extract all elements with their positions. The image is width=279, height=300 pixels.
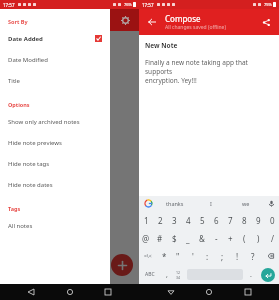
button[interactable]: 8 <box>237 211 251 229</box>
button[interactable]: / <box>265 229 279 247</box>
button[interactable]: 5 <box>195 211 209 229</box>
staticText: : <box>206 251 209 262</box>
button[interactable]: Backspace <box>260 247 279 265</box>
button[interactable]: # <box>153 229 167 247</box>
staticText: ! <box>236 251 239 262</box>
staticText: Hide note previews <box>8 139 102 147</box>
staticText: 17:57 <box>3 2 15 8</box>
staticText: All notes <box>8 222 102 230</box>
button[interactable]: 9 <box>251 211 265 229</box>
button[interactable]: : <box>200 247 215 265</box>
button[interactable]: 4 <box>181 211 195 229</box>
button[interactable]: 0 <box>265 211 279 229</box>
button[interactable]: I <box>193 196 228 211</box>
button[interactable]: Date Modified <box>0 49 110 70</box>
staticText: ABC <box>145 271 155 278</box>
staticText: Date Modified <box>8 56 102 64</box>
staticText: ' <box>192 251 194 262</box>
staticText: Show only archived notes <box>8 118 102 126</box>
staticText: # <box>157 233 163 244</box>
staticText: Options <box>8 101 30 108</box>
button[interactable]: , <box>161 266 172 283</box>
button[interactable]: - <box>209 229 223 247</box>
button[interactable]: ( <box>237 229 251 247</box>
button[interactable]: 2 <box>153 211 167 229</box>
button[interactable]: Date Added <box>0 28 110 49</box>
button[interactable]: _ <box>181 229 195 247</box>
staticText: / <box>271 233 274 244</box>
staticText: thanks <box>166 200 184 207</box>
staticText: =\< <box>144 253 152 260</box>
button[interactable]: Enter <box>261 268 275 282</box>
staticText: " <box>176 251 180 262</box>
staticText: 4 <box>186 215 191 226</box>
button[interactable]: " <box>171 247 185 265</box>
button[interactable]: ABC <box>139 266 161 283</box>
button[interactable]: Title <box>0 70 110 91</box>
button[interactable]: All notes <box>0 215 110 236</box>
staticText: 2 <box>158 215 163 226</box>
staticText: 9 <box>256 215 261 226</box>
staticText: we <box>242 200 250 207</box>
button[interactable]: $ <box>167 229 181 247</box>
staticText: _ <box>186 233 190 244</box>
button[interactable]: Voice input <box>263 196 279 211</box>
button[interactable]: Recents <box>101 285 115 299</box>
staticText: & <box>199 233 205 244</box>
button[interactable]: . <box>245 266 256 283</box>
button[interactable]: =\< <box>139 247 157 265</box>
button[interactable]: Settings <box>116 11 134 29</box>
button[interactable]: Home <box>63 285 77 299</box>
staticText: 6 <box>214 215 219 226</box>
button[interactable]: 7 <box>223 211 237 229</box>
staticText: ; <box>221 251 224 262</box>
staticText: I <box>210 200 212 207</box>
button[interactable]: * <box>157 247 171 265</box>
staticText: 0 <box>270 215 275 226</box>
staticText: @ <box>142 233 150 244</box>
staticText: 7 <box>228 215 233 226</box>
staticText: Tags <box>8 205 21 212</box>
staticText: 3 <box>172 215 177 226</box>
staticText: 8 <box>242 215 247 226</box>
button[interactable]: ' <box>185 247 200 265</box>
staticText: Compose <box>165 13 201 24</box>
button[interactable]: New note <box>111 254 133 276</box>
button[interactable]: Hide note tags <box>0 153 110 174</box>
staticText: 17:57 <box>142 2 154 8</box>
button[interactable]: 3 <box>167 211 181 229</box>
button[interactable]: Recents <box>241 285 255 299</box>
staticText: Sort By <box>8 18 28 25</box>
button[interactable]: thanks <box>157 196 193 211</box>
staticText: Date Added <box>8 35 95 43</box>
button[interactable]: 1 <box>139 211 153 229</box>
staticText: * <box>162 251 167 262</box>
staticText: All changes saved (offline) <box>165 24 226 31</box>
staticText: 76% <box>124 2 132 7</box>
button[interactable]: Share <box>258 14 274 30</box>
staticText: - <box>215 233 218 244</box>
button[interactable]: Hide note dates <box>0 174 110 195</box>
button[interactable]: ? <box>245 247 260 265</box>
button[interactable]: ; <box>215 247 230 265</box>
staticText: $ <box>172 233 177 244</box>
staticText: + <box>228 233 233 244</box>
button[interactable]: @ <box>139 229 153 247</box>
button[interactable]: Back <box>164 285 178 299</box>
button[interactable]: Back <box>144 14 160 30</box>
button[interactable]: 12 34 <box>172 266 185 283</box>
button[interactable]: we <box>228 196 263 211</box>
button[interactable]: & <box>195 229 209 247</box>
button[interactable]: Home <box>202 285 216 299</box>
button[interactable]: 6 <box>209 211 223 229</box>
button[interactable]: Back <box>24 285 38 299</box>
button[interactable]: ) <box>251 229 265 247</box>
button[interactable]: ! <box>230 247 245 265</box>
button[interactable] <box>139 196 157 211</box>
staticText: Hide note dates <box>8 181 102 189</box>
button[interactable]: Hide note previews <box>0 132 110 153</box>
staticText: 1 <box>144 215 149 226</box>
button[interactable]: Show only archived notes <box>0 111 110 132</box>
button[interactable]: + <box>223 229 237 247</box>
